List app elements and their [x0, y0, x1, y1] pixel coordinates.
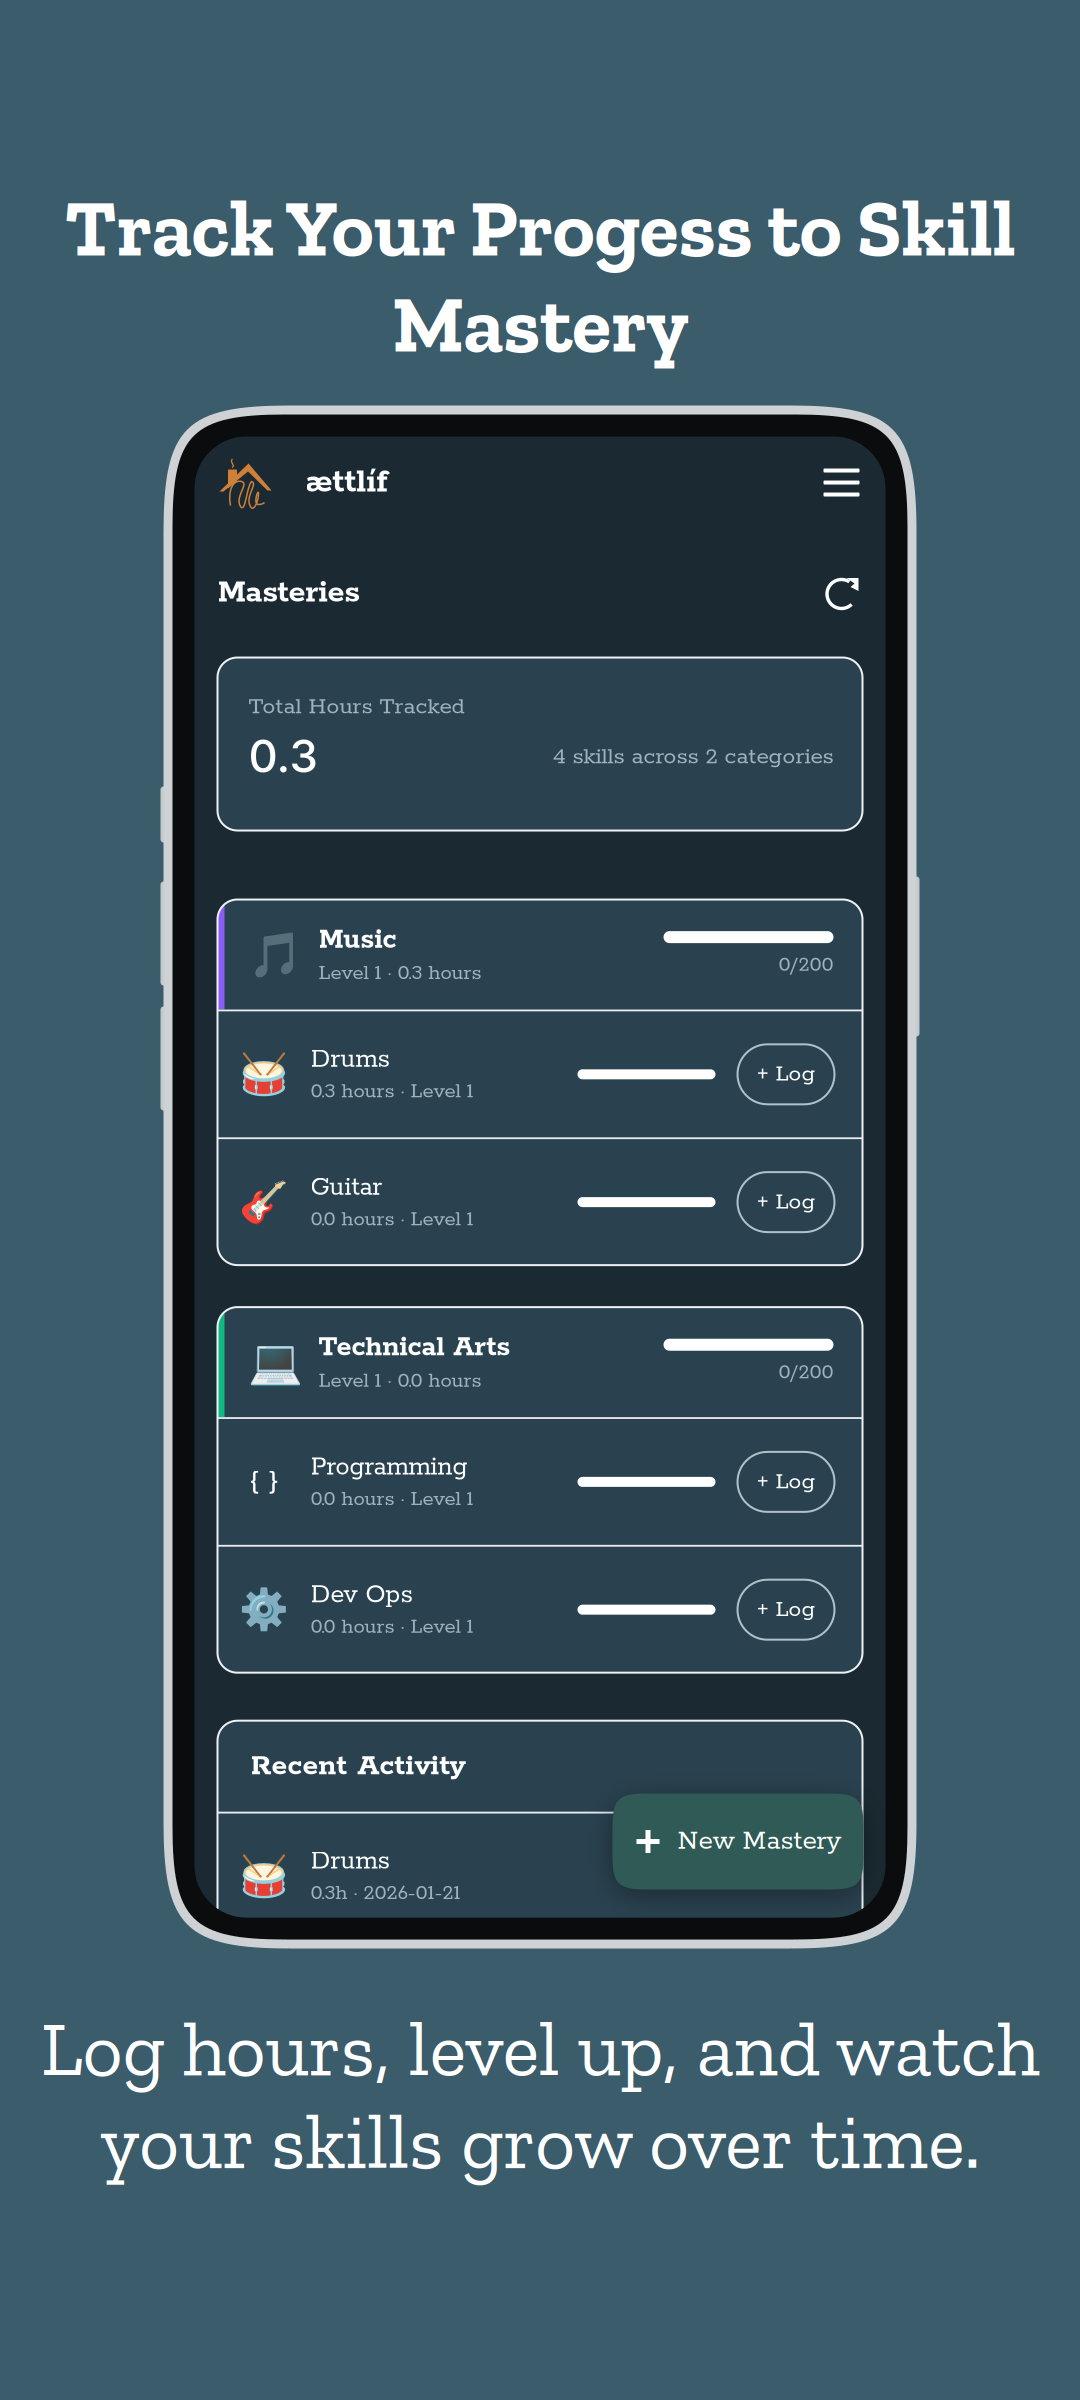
staticText: Music	[318, 923, 396, 958]
button[interactable]: Menu	[818, 459, 864, 505]
staticText: + Log	[756, 1060, 815, 1089]
staticText: ættlíf	[305, 462, 387, 503]
staticText: 🎵	[248, 929, 303, 980]
staticText: 💻	[248, 1336, 303, 1388]
staticText: { }	[249, 1464, 278, 1500]
staticText: Drums	[310, 1846, 389, 1877]
staticText: 0/200	[778, 952, 833, 978]
staticText: Total Hours Tracked	[248, 692, 464, 721]
staticText: 0.3h · 2026-01-21	[310, 1880, 460, 1906]
staticText: Track Your Progess to Skill Mastery	[64, 180, 1015, 372]
staticText: + Log	[756, 1188, 815, 1216]
button[interactable]: + Log	[737, 1452, 834, 1512]
staticText: Level 1 · 0.0 hours	[318, 1368, 481, 1394]
staticText: + Log	[756, 1595, 815, 1624]
staticText: 🎸	[239, 1179, 289, 1226]
staticText: New Mastery	[677, 1825, 841, 1858]
staticText: 0.3 hours · Level 1	[310, 1079, 473, 1105]
staticText: 0.0 hours · Level 1	[310, 1486, 473, 1512]
staticText: 0/200	[778, 1360, 833, 1385]
staticText: 4 skills across 2 categories	[552, 742, 833, 771]
staticText: ⚙️	[239, 1586, 289, 1633]
staticText: 🥁	[239, 1853, 289, 1899]
staticText: Log hours, level up, and watch your skil…	[40, 2002, 1039, 2188]
staticText: 0.0 hours · Level 1	[310, 1207, 473, 1232]
staticText: Drums	[310, 1044, 389, 1076]
staticText: 🥁	[239, 1051, 289, 1098]
staticText: Level 1 · 0.3 hours	[318, 960, 481, 986]
staticText: Programming	[310, 1452, 467, 1483]
staticText: Guitar	[310, 1172, 382, 1204]
staticText: Technical Arts	[318, 1330, 510, 1365]
button[interactable]: + Log	[737, 1172, 834, 1232]
button[interactable]: + Log	[737, 1044, 834, 1104]
button[interactable]: + Log	[737, 1580, 834, 1640]
button[interactable]: Refresh	[824, 572, 862, 614]
staticText: Masteries	[217, 573, 359, 613]
staticText: Dev Ops	[310, 1579, 412, 1611]
staticText: 0.0 hours · Level 1	[310, 1614, 473, 1640]
staticText: + Log	[756, 1467, 815, 1496]
staticText: Recent Activity	[250, 1748, 465, 1784]
button[interactable]: New Mastery	[612, 1793, 863, 1889]
staticText: 0.3	[248, 728, 317, 783]
